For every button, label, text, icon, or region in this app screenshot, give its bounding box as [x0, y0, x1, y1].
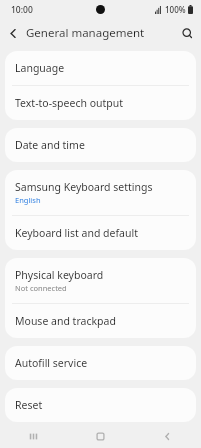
staticText: Reset: [15, 398, 43, 412]
staticText: 100%: [165, 4, 186, 15]
staticText: 10:00: [11, 4, 33, 16]
staticText: English: [15, 195, 41, 205]
button[interactable]: Recents: [0, 425, 67, 448]
staticText: Mouse and trackpad: [15, 314, 116, 328]
staticText: Date and time: [15, 138, 85, 152]
button[interactable]: Language: [5, 51, 196, 85]
button[interactable]: Keyboard list and default: [5, 216, 196, 250]
button[interactable]: Physical keyboard: [5, 258, 196, 303]
staticText: Not connected: [15, 283, 67, 293]
button[interactable]: Reset: [5, 388, 196, 422]
button[interactable]: Samsung Keyboard settings: [5, 170, 196, 215]
button[interactable]: Home: [67, 425, 134, 448]
staticText: Language: [15, 61, 65, 75]
button[interactable]: Date and time: [5, 128, 196, 162]
button[interactable]: Search: [173, 19, 201, 47]
button[interactable]: Back: [0, 20, 26, 46]
button[interactable]: Mouse and trackpad: [5, 304, 196, 338]
staticText: Keyboard list and default: [15, 226, 138, 240]
button[interactable]: Back: [134, 425, 201, 448]
staticText: Autofill service: [15, 356, 88, 370]
button[interactable]: Text-to-speech output: [5, 86, 196, 120]
staticText: General management: [26, 25, 145, 41]
button[interactable]: Autofill service: [5, 346, 196, 380]
staticText: Samsung Keyboard settings: [15, 180, 153, 194]
staticText: Physical keyboard: [15, 268, 104, 282]
staticText: Text-to-speech output: [15, 96, 124, 110]
